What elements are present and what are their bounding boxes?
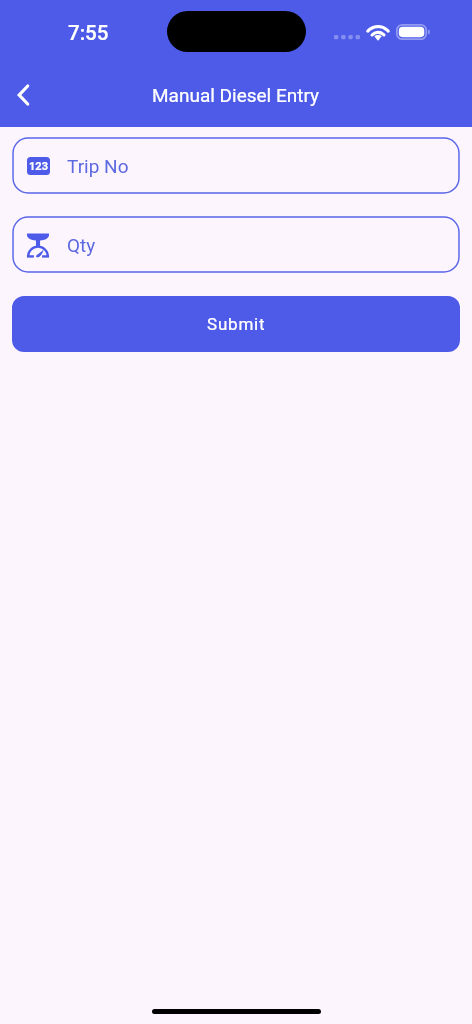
button[interactable]: Qty — [12, 216, 460, 273]
staticText: Qty — [67, 234, 96, 256]
button[interactable]: Submit — [12, 296, 460, 352]
staticText: 7:55 — [68, 21, 109, 45]
staticText: Trip No — [67, 155, 129, 177]
button[interactable]: 123 — [12, 137, 460, 194]
staticText: Manual Diesel Entry — [152, 84, 320, 106]
button[interactable]: Back — [2, 73, 46, 117]
staticText: 123 — [29, 160, 48, 173]
staticText: Submit — [207, 314, 266, 334]
